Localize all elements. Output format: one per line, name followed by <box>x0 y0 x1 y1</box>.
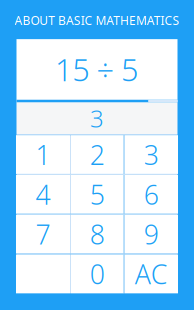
staticText: 8 <box>90 216 105 252</box>
staticText: 3 <box>90 102 104 134</box>
button[interactable]: 0 <box>71 255 124 293</box>
staticText: 15 ÷ 5 <box>55 49 139 90</box>
staticText: ABOUT BASIC MATHEMATICS <box>15 12 179 28</box>
staticText: AC <box>135 256 168 292</box>
staticText: 7 <box>35 216 50 252</box>
button[interactable]: 2 <box>71 135 124 174</box>
button[interactable]: 7 <box>16 215 70 254</box>
staticText: 9 <box>144 216 159 252</box>
button[interactable]: 8 <box>71 215 124 254</box>
staticText: 3 <box>144 137 159 172</box>
staticText: 0 <box>90 256 105 292</box>
button[interactable]: 6 <box>125 175 178 214</box>
staticText: 1 <box>35 137 50 172</box>
button[interactable]: AC <box>125 255 178 293</box>
button[interactable]: 9 <box>125 215 178 254</box>
staticText: 4 <box>35 177 50 212</box>
button[interactable]: 4 <box>16 175 70 214</box>
staticText: 6 <box>144 177 159 212</box>
button[interactable]: 3 <box>125 135 178 174</box>
staticText: 2 <box>90 137 105 172</box>
button[interactable]: 1 <box>16 135 70 174</box>
button[interactable]: 5 <box>71 175 124 214</box>
staticText: 5 <box>90 177 105 212</box>
